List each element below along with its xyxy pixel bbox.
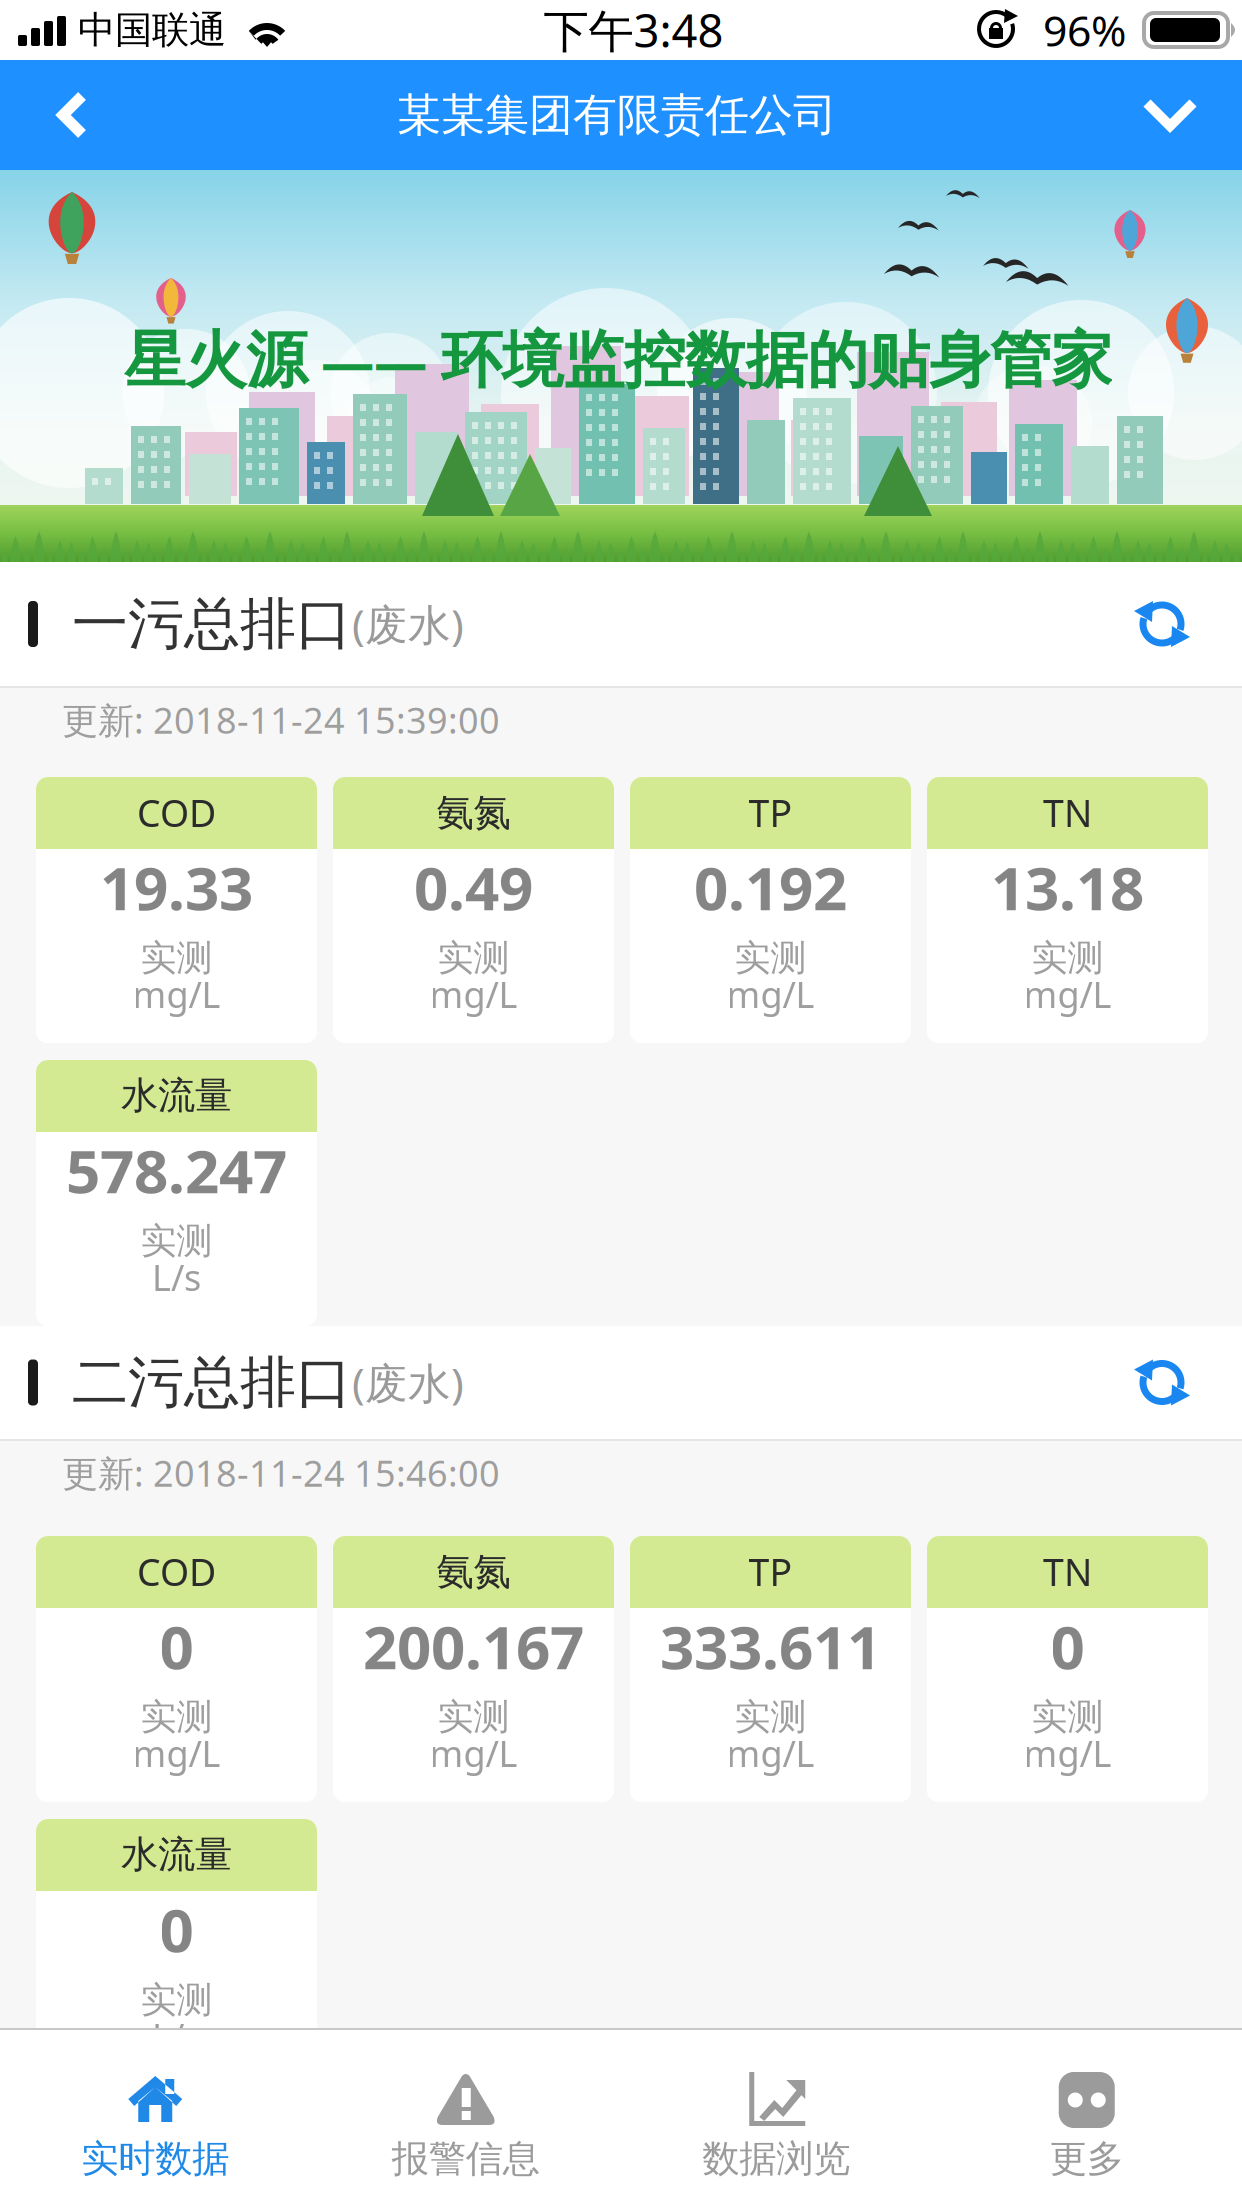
staticText: 实测 [437,936,509,980]
staticText: 更新: 2018-11-24 15:46:00 [62,1449,500,1497]
button[interactable]: 更多 [931,2030,1242,2208]
staticText: COD [137,788,216,837]
staticText: TN [1043,1547,1092,1596]
staticText: (废水) [352,596,464,652]
staticText: (废水) [352,1354,464,1411]
staticText: 水流量 [121,1832,232,1877]
staticText: 数据浏览 [702,2136,850,2182]
staticText: 0.192 [694,847,847,927]
button[interactable]: 数据浏览 [621,2030,931,2208]
staticText: 333.611 [660,1606,881,1686]
staticText: 实时数据 [81,2136,229,2182]
button[interactable]: Refresh [1101,562,1242,686]
staticText: 19.33 [100,847,253,927]
staticText: mg/L [1023,1729,1111,1777]
staticText: —— [307,325,441,396]
staticText: 实测 [437,1695,509,1739]
staticText: 96% [1043,2,1126,58]
staticText: TP [748,1547,792,1596]
staticText: mg/L [429,970,517,1018]
staticText: 0 [1050,1606,1084,1686]
staticText: 实测 [140,1978,212,2022]
staticText: 水流量 [121,1073,232,1118]
staticText: TN [1043,788,1092,837]
staticText: 二污总排口 [72,1348,352,1417]
staticText: mg/L [132,1729,220,1777]
staticText: L/s [152,1253,201,1301]
staticText: 578.247 [66,1130,287,1210]
staticText: 0 [159,1606,193,1686]
button[interactable]: Back [0,60,116,170]
staticText: mg/L [429,1729,517,1777]
staticText: 更新: 2018-11-24 15:39:00 [62,696,500,744]
staticText: mg/L [726,1729,814,1777]
staticText: 一污总排口 [72,590,352,658]
staticText: 实测 [734,1695,806,1739]
staticText: 中国联通 [78,7,226,53]
staticText: L/s [152,2012,201,2060]
staticText: 报警信息 [392,2136,540,2182]
staticText: 某某集团有限责任公司 [397,88,837,142]
button[interactable]: Refresh [1101,1326,1242,1439]
staticText: 氨氮 [436,1549,510,1594]
staticText: mg/L [132,970,220,1018]
staticText: 0.49 [414,847,533,927]
staticText: COD [137,1547,216,1596]
button[interactable]: 实时数据 [0,2030,310,2208]
button[interactable]: More [1118,60,1242,170]
staticText: 星火源 [124,323,307,398]
staticText: 200.167 [363,1606,584,1686]
button[interactable]: 报警信息 [310,2030,621,2208]
staticText: 下午3:48 [543,0,723,60]
staticText: 实测 [140,1219,212,1263]
staticText: 实测 [140,1695,212,1739]
staticText: 环境监控数据的贴身管家 [441,323,1112,398]
staticText: TP [748,788,792,837]
staticText: 实测 [734,936,806,980]
staticText: mg/L [1023,970,1111,1018]
staticText: 实测 [140,936,212,980]
staticText: 更多 [1050,2136,1124,2182]
staticText: 0 [159,1889,193,1969]
staticText: mg/L [726,970,814,1018]
staticText: 13.18 [991,847,1144,927]
staticText: 实测 [1031,936,1103,980]
staticText: 氨氮 [436,790,510,835]
staticText: 实测 [1031,1695,1103,1739]
